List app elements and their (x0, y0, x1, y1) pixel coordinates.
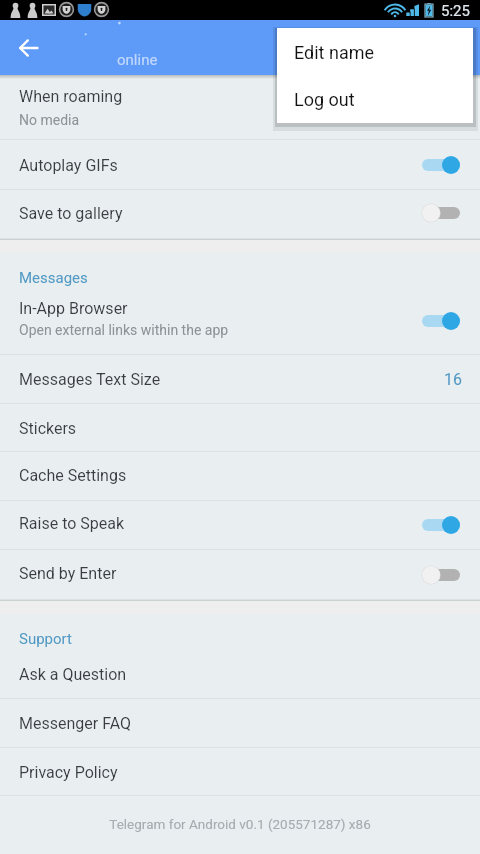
button[interactable]: Save to gallery (0, 190, 480, 239)
button[interactable]: Edit name (277, 28, 473, 76)
button[interactable]: Send by Enter (0, 550, 480, 600)
staticText: 16 (444, 370, 462, 389)
button[interactable]: Toggle off (422, 202, 460, 224)
staticText: Ask a Question (19, 665, 127, 684)
button[interactable]: Messenger FAQ (0, 699, 480, 748)
staticText: Support (19, 630, 72, 648)
staticText: When roaming (19, 87, 123, 106)
staticText: Log out (294, 89, 355, 110)
staticText: Messenger FAQ (19, 714, 132, 733)
button[interactable]: Log out (277, 76, 473, 123)
staticText: Cache Settings (19, 466, 127, 485)
staticText: Raise to Speak (19, 514, 125, 533)
staticText: No media (19, 112, 80, 128)
button[interactable]: Toggle on (422, 310, 460, 332)
button[interactable]: In-App Browser (0, 288, 480, 355)
staticText: 5:25 (441, 2, 470, 20)
staticText: Messages (19, 269, 88, 287)
button[interactable]: Autoplay GIFs (0, 140, 480, 190)
button[interactable]: When roaming (0, 76, 480, 140)
staticText: Edit name (294, 42, 375, 63)
button[interactable]: Toggle on (422, 154, 460, 176)
button[interactable]: Cache Settings (0, 452, 480, 501)
button[interactable]: Ask a Question (0, 650, 480, 699)
staticText: Autoplay GIFs (19, 156, 118, 175)
staticText: online (117, 51, 158, 69)
staticText: Stickers (19, 419, 77, 438)
button[interactable]: Privacy Policy (0, 748, 480, 796)
button[interactable]: Toggle off (422, 564, 460, 586)
button[interactable]: Raise to Speak (0, 501, 480, 550)
staticText: Privacy Policy (19, 763, 118, 782)
staticText: Send by Enter (19, 564, 117, 583)
staticText: In-App Browser (19, 299, 128, 318)
button[interactable]: Back (9, 27, 49, 67)
button[interactable]: Stickers (0, 404, 480, 452)
staticText: Open external links within the app (19, 322, 229, 338)
button[interactable]: Messages Text Size (0, 355, 480, 404)
staticText: Save to gallery (19, 204, 123, 223)
button[interactable]: Toggle on (422, 514, 460, 536)
staticText: Telegram for Android v0.1 (205571287) x8… (0, 816, 480, 832)
staticText: Messages Text Size (19, 370, 161, 389)
